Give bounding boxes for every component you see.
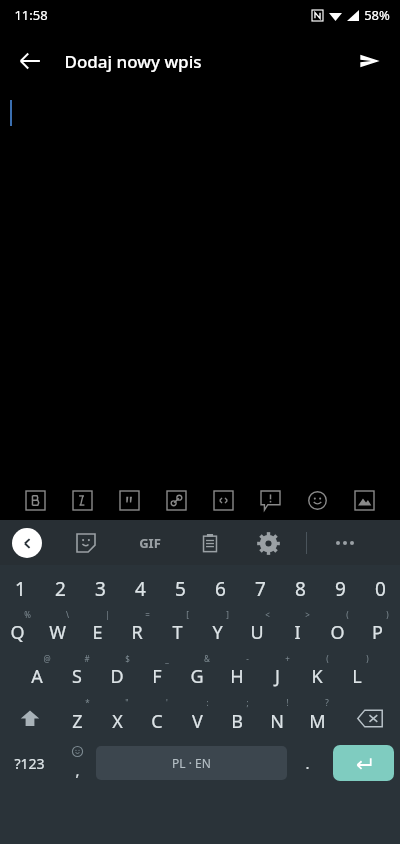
button[interactable]: 2 — [40, 571, 80, 607]
staticText: ( — [346, 609, 349, 620]
button[interactable]: W — [40, 607, 80, 651]
staticText: # — [84, 653, 90, 664]
button[interactable]: Spoiler — [247, 480, 294, 520]
button[interactable]: Z — [60, 695, 100, 741]
button[interactable]: X — [100, 695, 140, 741]
button[interactable]: U — [240, 607, 280, 651]
button[interactable]: Settings — [252, 527, 284, 559]
staticText: U — [250, 620, 264, 645]
button[interactable]: A — [20, 651, 60, 695]
button[interactable]: 0 — [360, 571, 400, 607]
button[interactable]: D — [100, 651, 140, 695]
staticText: . — [305, 753, 310, 773]
staticText: " — [125, 697, 129, 708]
button[interactable]: Emoji — [294, 480, 341, 520]
button[interactable]: L — [340, 651, 380, 695]
staticText: X — [112, 709, 123, 734]
button[interactable]: 4 — [120, 571, 160, 607]
staticText: Q — [10, 620, 25, 645]
button[interactable]: Enter — [333, 745, 394, 781]
staticText: Z — [72, 709, 83, 734]
button[interactable]: G — [180, 651, 220, 695]
staticText: O — [330, 620, 345, 645]
button[interactable]: M — [300, 695, 340, 741]
button[interactable]: P — [360, 607, 400, 651]
button[interactable]: Bold — [12, 480, 59, 520]
button[interactable]: . — [287, 741, 327, 785]
button[interactable]: T — [160, 607, 200, 651]
button[interactable]: Back — [8, 39, 52, 83]
staticText: ' — [166, 697, 168, 708]
button[interactable]: H — [220, 651, 260, 695]
staticText: % — [24, 609, 31, 620]
button[interactable]: C — [140, 695, 180, 741]
button[interactable]: J — [260, 651, 300, 695]
button[interactable]: 5 — [160, 571, 200, 607]
staticText: @ — [43, 653, 51, 664]
staticText: , — [75, 760, 80, 780]
staticText: H — [230, 664, 244, 689]
button[interactable]: Code — [200, 480, 247, 520]
button[interactable]: Q — [0, 607, 40, 651]
button[interactable]: 9 — [320, 571, 360, 607]
staticText: V — [192, 709, 203, 734]
staticText: ! — [286, 697, 289, 708]
staticText: I — [294, 620, 301, 645]
button[interactable]: O — [320, 607, 360, 651]
button[interactable]: 3 — [80, 571, 120, 607]
staticText: A — [31, 664, 43, 689]
button[interactable]: Back — [12, 528, 42, 558]
staticText: 3 — [95, 576, 106, 602]
staticText: L — [352, 664, 362, 689]
staticText: J — [275, 664, 280, 689]
button[interactable]: S — [60, 651, 100, 695]
staticText: N — [270, 709, 284, 734]
staticText: P — [372, 620, 383, 645]
staticText: C — [151, 709, 163, 734]
staticText: ) — [366, 653, 369, 664]
button[interactable]: 1 — [0, 571, 40, 607]
staticText: W — [49, 620, 66, 645]
button[interactable]: K — [300, 651, 340, 695]
button[interactable]: B — [220, 695, 260, 741]
button[interactable]: Emoji and comma — [59, 741, 96, 785]
button[interactable]: Clipboard — [194, 527, 226, 559]
staticText: 8 — [295, 576, 306, 602]
button[interactable]: I — [280, 607, 320, 651]
button[interactable]: Backspace — [340, 695, 400, 741]
button[interactable]: V — [180, 695, 220, 741]
staticText: & — [204, 653, 210, 664]
staticText: 58% — [364, 6, 390, 24]
button[interactable]: Stickers — [70, 527, 102, 559]
button[interactable]: Shift — [0, 695, 60, 741]
button[interactable]: Quote — [106, 480, 153, 520]
button[interactable]: Y — [200, 607, 240, 651]
staticText: 6 — [215, 576, 226, 602]
staticText: < — [265, 609, 270, 620]
staticText: M — [309, 709, 326, 734]
button[interactable]: More options — [329, 527, 361, 559]
staticText: Dodaj nowy wpis — [64, 50, 202, 73]
button[interactable]: E — [80, 607, 120, 651]
button[interactable]: GIF — [130, 527, 170, 559]
button[interactable]: ?123 — [0, 741, 59, 785]
button[interactable]: N — [260, 695, 300, 741]
staticText: 5 — [175, 576, 186, 602]
button[interactable]: 8 — [280, 571, 320, 607]
staticText: ] — [226, 609, 229, 620]
button[interactable]: 7 — [240, 571, 280, 607]
staticText: K — [311, 664, 323, 689]
button[interactable]: F — [140, 651, 180, 695]
button[interactable]: Send — [348, 39, 392, 83]
button[interactable]: Image — [341, 480, 388, 520]
button[interactable]: Link — [153, 480, 200, 520]
staticText: $ — [125, 653, 130, 664]
staticText: 4 — [135, 576, 146, 602]
staticText: S — [72, 664, 82, 689]
button[interactable]: 6 — [200, 571, 240, 607]
button[interactable]: PL · EN — [96, 746, 287, 780]
staticText: 9 — [335, 576, 346, 602]
button[interactable]: Italic — [59, 480, 106, 520]
staticText: ) — [386, 609, 389, 620]
button[interactable]: R — [120, 607, 160, 651]
